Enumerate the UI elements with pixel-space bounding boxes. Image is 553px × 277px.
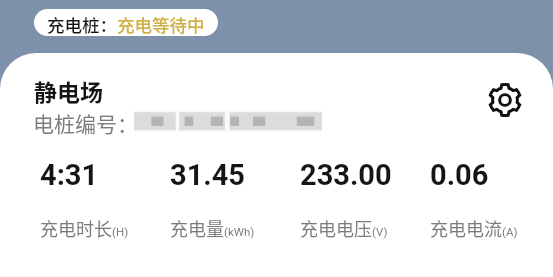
- staticText: 电桩编号：: [33, 108, 138, 138]
- staticText: 充电电压(V): [300, 215, 388, 241]
- staticText: 充电量(kWh): [170, 215, 255, 241]
- staticText: 充电时长(H): [40, 215, 129, 241]
- staticText: 31.45: [170, 158, 245, 192]
- staticText: 充电电流(A): [430, 215, 518, 241]
- staticText: 静电场: [34, 74, 103, 107]
- button[interactable]: Settings: [485, 80, 525, 120]
- staticText: 0.06: [430, 158, 489, 192]
- staticText: 充电桩：充电等待中: [47, 12, 205, 36]
- button[interactable]: 充电桩：充电等待中: [34, 9, 218, 36]
- staticText: 233.00: [300, 158, 392, 192]
- staticText: 4:31: [40, 158, 99, 192]
